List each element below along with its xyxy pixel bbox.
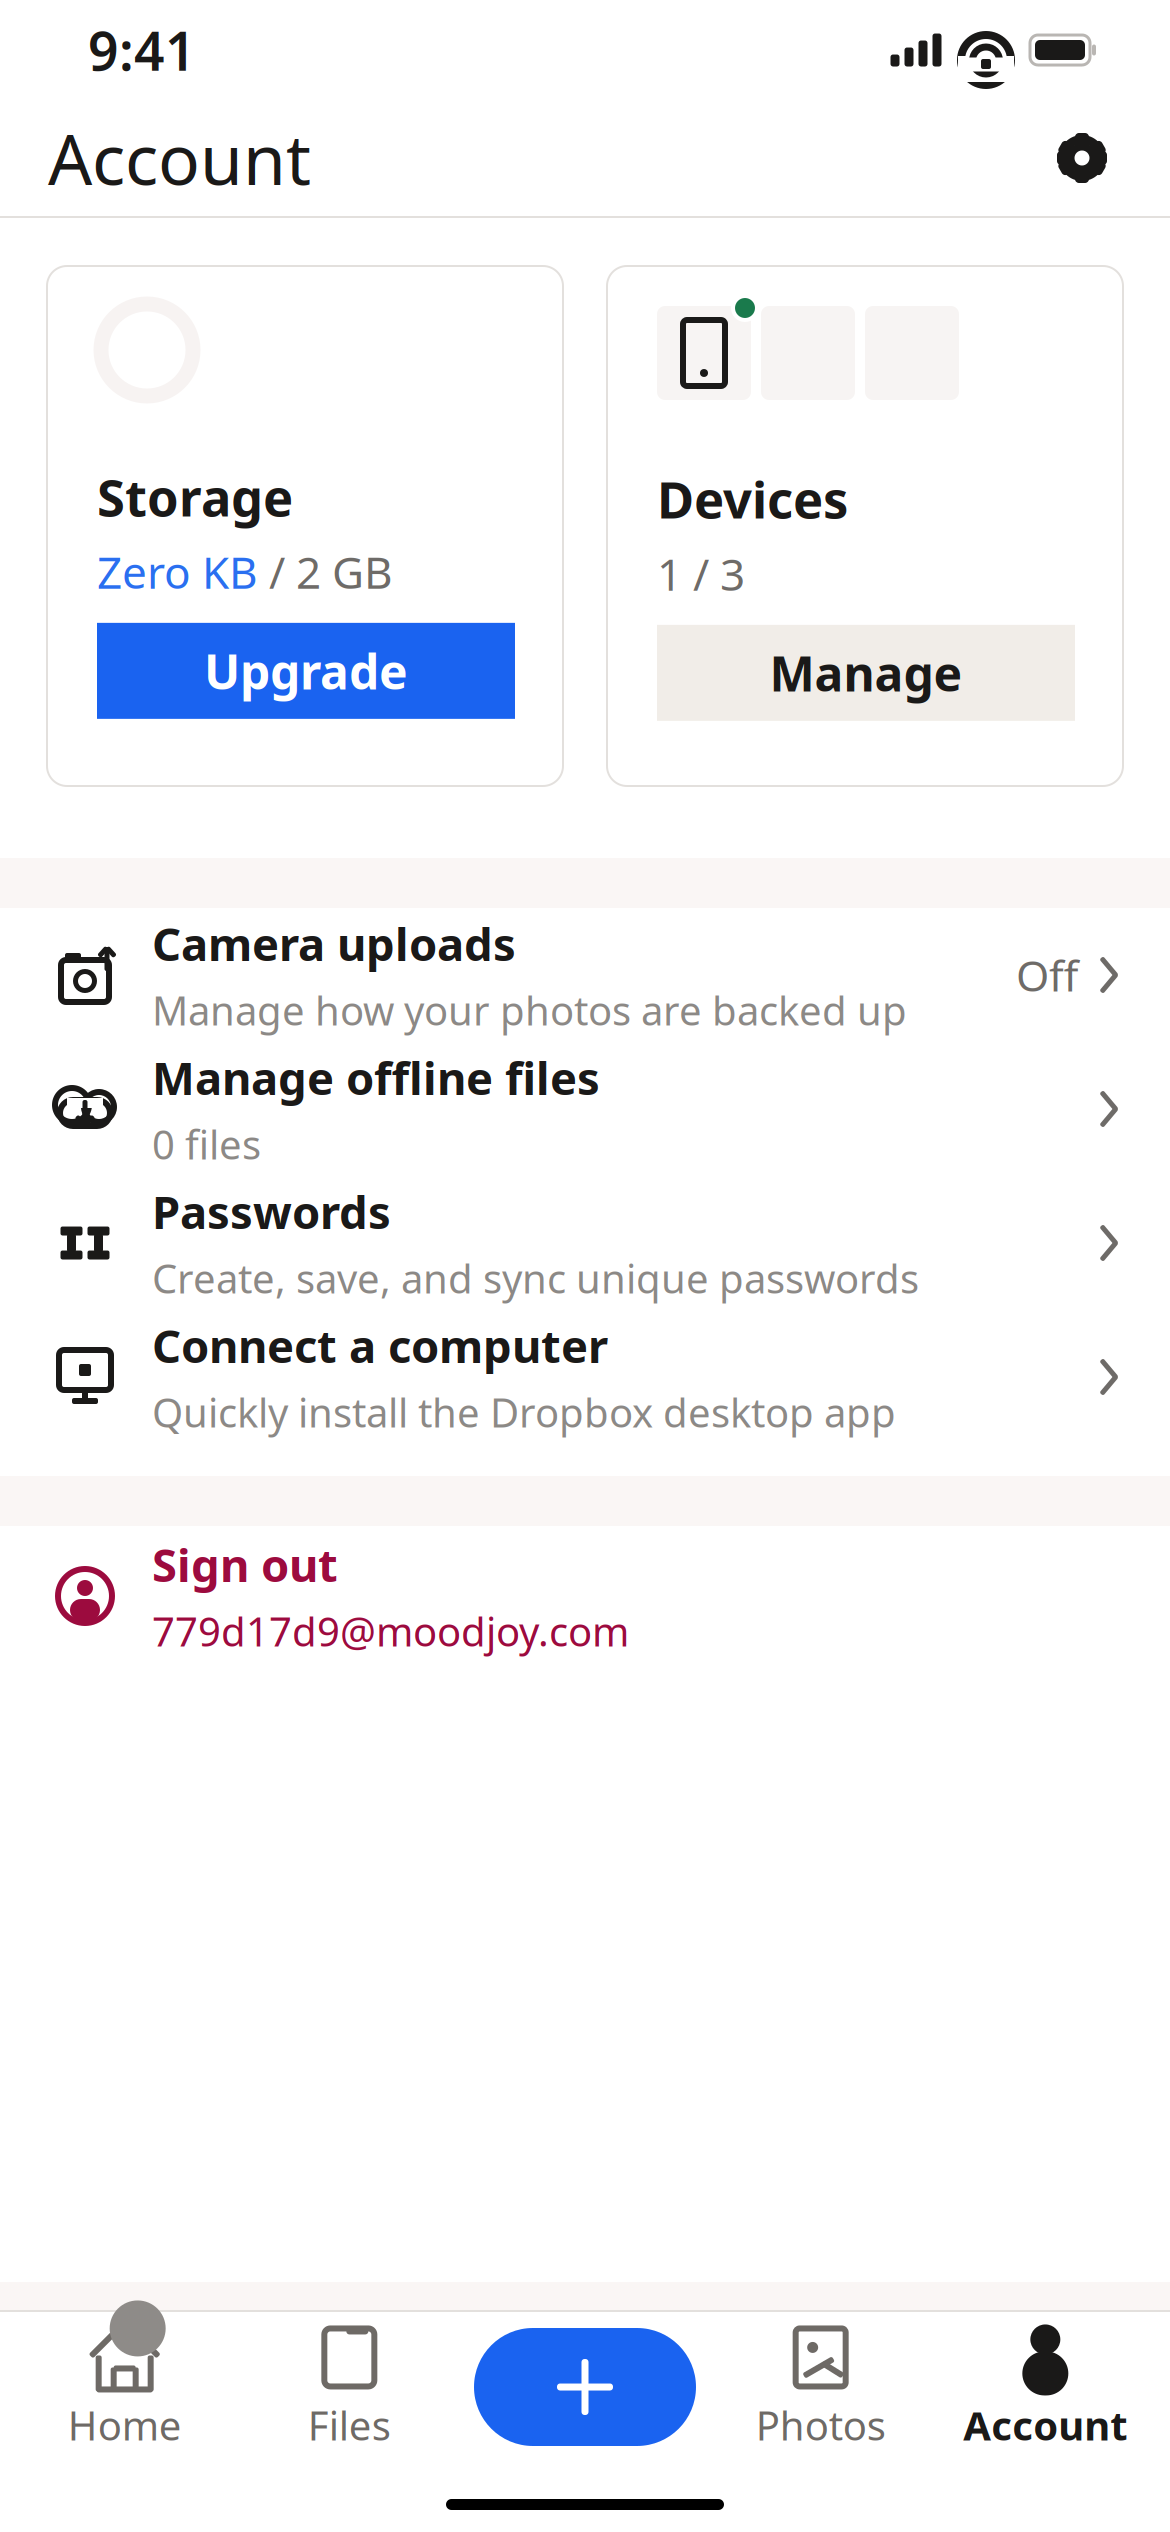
staticText: Off [1016, 947, 1078, 1003]
button[interactable]: Files [249, 2322, 449, 2452]
staticText: Create, save, and sync unique passwords [152, 1251, 919, 1305]
staticText: Upgrade [204, 639, 408, 703]
staticText: / [258, 542, 296, 601]
button[interactable]: Create [474, 2322, 696, 2452]
button[interactable]: Settings [1042, 118, 1122, 198]
staticText: 0 files [152, 1117, 261, 1171]
staticText: Photos [756, 2398, 886, 2451]
staticText: Zero KB [97, 542, 258, 601]
button[interactable]: Home [25, 2322, 225, 2452]
staticText: Manage how your photos are backed up [152, 983, 907, 1037]
staticText: Camera uploads [152, 913, 516, 973]
button[interactable]: Manage [657, 625, 1075, 721]
staticText: Passwords [152, 1181, 391, 1241]
staticText: Sign out [152, 1534, 338, 1594]
staticText: 9:41 [88, 15, 196, 85]
staticText: 779d17d9@moodjoy.com [152, 1604, 629, 1658]
button[interactable]: Passwords [0, 1176, 1170, 1310]
button[interactable]: Connect a computer [0, 1310, 1170, 1444]
button[interactable]: Sign out [0, 1526, 1170, 1666]
staticText: Manage offline files [152, 1047, 600, 1107]
staticText: Quickly install the Dropbox desktop app [152, 1385, 896, 1439]
staticText: Devices [657, 465, 848, 532]
staticText: Connect a computer [152, 1315, 608, 1375]
staticText: Account [963, 2398, 1127, 2451]
staticText: Manage [769, 641, 962, 705]
button[interactable]: Photos [721, 2322, 921, 2452]
staticText: Account [48, 112, 311, 204]
button[interactable]: Camera uploads [0, 908, 1170, 1042]
staticText: Storage [97, 463, 293, 530]
staticText: 1 / 3 [657, 544, 745, 603]
button[interactable]: Manage offline files [0, 1042, 1170, 1176]
button[interactable]: Upgrade [97, 623, 515, 719]
staticText: 2 GB [296, 542, 393, 601]
staticText: Files [308, 2398, 391, 2451]
button[interactable]: Account [945, 2322, 1145, 2452]
staticText: Home [68, 2398, 182, 2451]
